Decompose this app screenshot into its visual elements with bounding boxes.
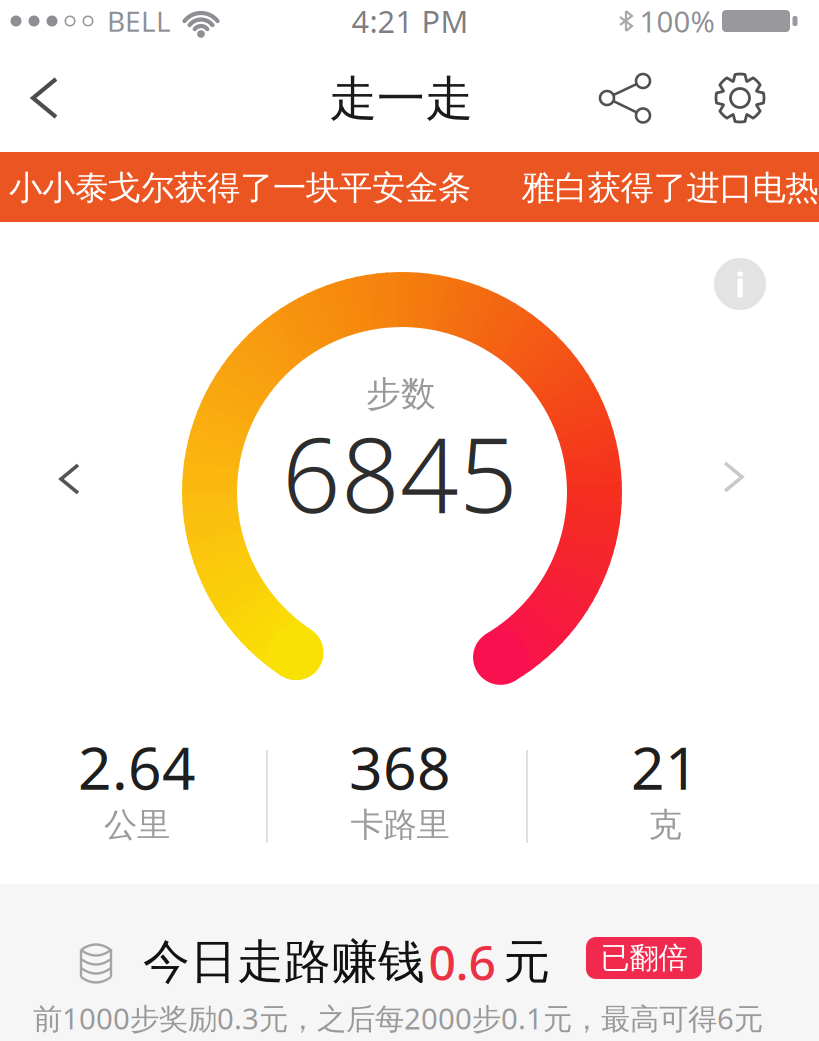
staticText: 卡路里 <box>350 804 449 845</box>
staticText: 小小泰戈尔获得了一块平安金条 <box>9 167 471 208</box>
staticText: BELL <box>107 2 171 40</box>
staticText: 6845 <box>282 405 518 541</box>
staticText: 前1000步奖励0.3元，之后每2000步0.1元，最高可得6元 <box>33 998 763 1037</box>
button[interactable]: 小小泰戈尔获得了一块平安金条 <box>0 152 819 222</box>
button[interactable] <box>22 76 66 120</box>
staticText: 21 <box>631 728 699 806</box>
staticText: 368 <box>349 728 451 806</box>
staticText: 0.6 <box>428 930 495 994</box>
staticText: 元 <box>503 933 550 991</box>
button[interactable] <box>48 457 92 501</box>
staticText: 雅白获得了进口电热水器 <box>521 167 819 208</box>
button[interactable] <box>708 66 772 130</box>
staticText: i <box>735 261 745 307</box>
staticText: 今日走路赚钱 <box>143 933 425 991</box>
button[interactable] <box>593 68 657 132</box>
button[interactable] <box>711 455 755 499</box>
staticText: 走一走 <box>329 69 473 128</box>
staticText: 100% <box>639 1 714 40</box>
button[interactable]: 已翻倍 <box>586 937 702 979</box>
staticText: 4:21 PM <box>351 1 468 41</box>
staticText: 步数 <box>366 373 436 415</box>
staticText: 已翻倍 <box>600 940 687 976</box>
staticText: 公里 <box>104 804 170 845</box>
staticText: 2.64 <box>78 728 196 806</box>
staticText: 克 <box>648 804 681 845</box>
button[interactable]: i <box>714 258 766 310</box>
